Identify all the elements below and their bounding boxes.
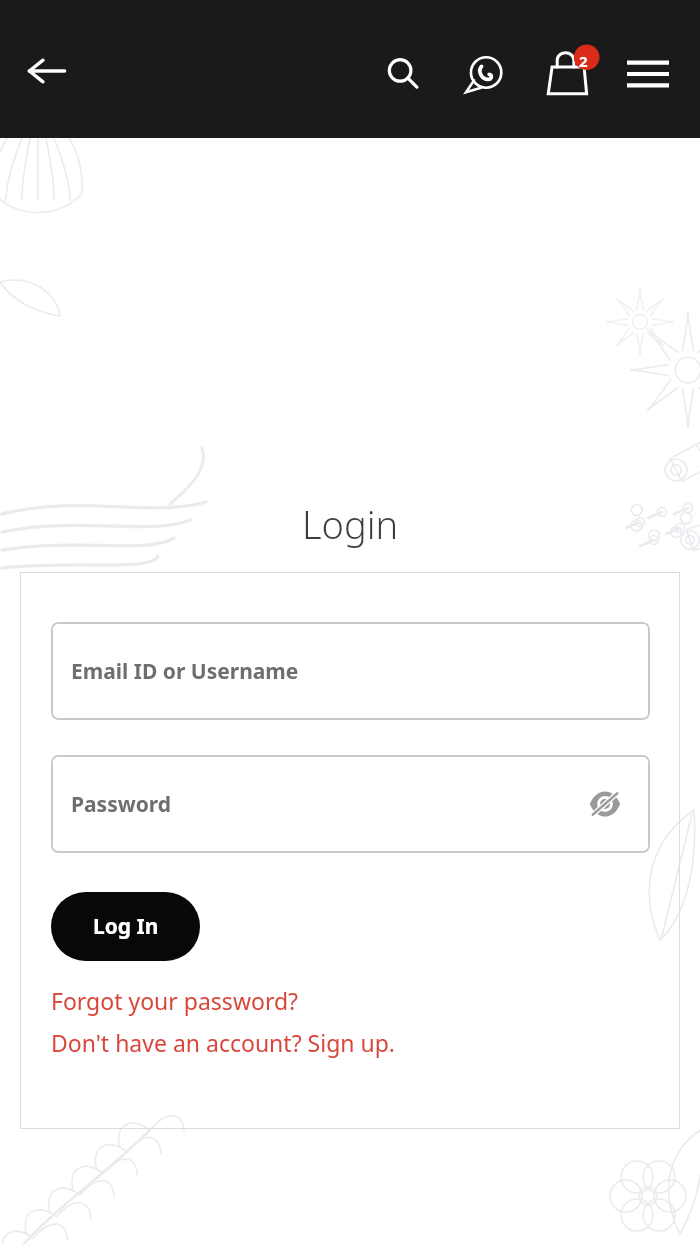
button[interactable]: Don't have an account? Sign up. — [51, 1027, 396, 1058]
staticText: Log In — [93, 912, 159, 941]
button[interactable]: Show password — [582, 781, 628, 827]
button[interactable]: WhatsApp — [457, 46, 513, 102]
button[interactable]: Email ID or Username — [51, 622, 650, 720]
staticText: Login — [302, 498, 399, 550]
staticText: Email ID or Username — [71, 657, 299, 686]
staticText: Don't have an account? Sign up. — [51, 1027, 396, 1058]
button[interactable]: Search — [375, 46, 431, 102]
button[interactable]: Log In — [51, 892, 200, 961]
staticText: 2 — [579, 51, 588, 71]
button[interactable]: Back — [18, 42, 76, 100]
button[interactable]: Password — [51, 755, 650, 853]
button[interactable]: Cart, 2 items — [538, 40, 602, 104]
button[interactable]: Forgot your password? — [51, 985, 299, 1016]
staticText: Forgot your password? — [51, 985, 299, 1016]
staticText: Password — [71, 790, 172, 819]
button[interactable]: Menu — [620, 46, 676, 102]
